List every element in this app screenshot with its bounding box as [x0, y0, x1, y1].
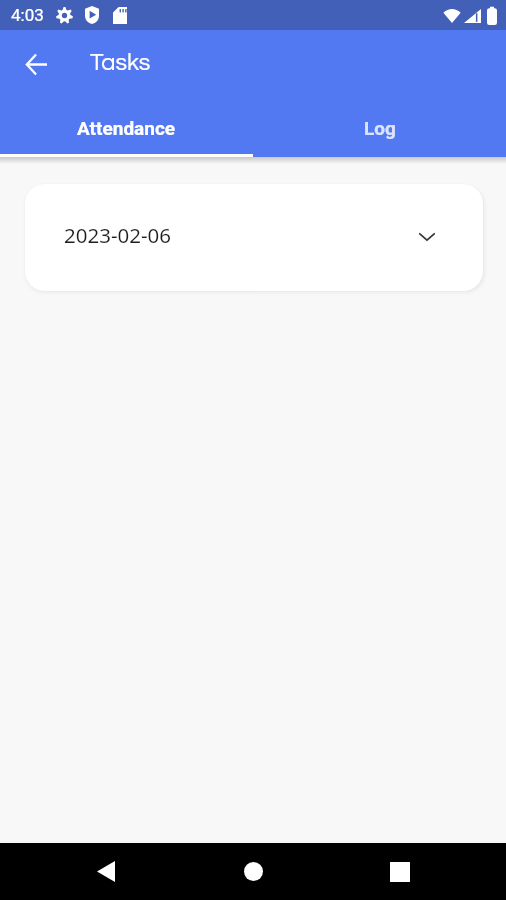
staticText: 4:03 [11, 5, 44, 25]
button[interactable]: 2023-02-06 [25, 184, 483, 291]
button[interactable]: Recent apps [359, 843, 441, 900]
button[interactable]: Home [212, 843, 294, 900]
staticText: Tasks [90, 50, 151, 75]
button[interactable]: Back [12, 40, 60, 88]
staticText: 2023-02-06 [64, 221, 172, 249]
button[interactable]: Log [253, 98, 506, 157]
button[interactable]: Back [65, 843, 147, 900]
staticText: Attendance [77, 117, 176, 139]
button[interactable]: Attendance [0, 98, 253, 157]
staticText: Log [364, 117, 396, 139]
